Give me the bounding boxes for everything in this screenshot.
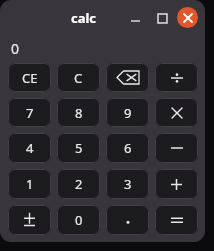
button[interactable]: 4: [8, 133, 51, 163]
button[interactable]: 8: [57, 98, 100, 127]
button[interactable]: [155, 98, 198, 127]
button[interactable]: [155, 169, 198, 199]
button[interactable]: Backspace: [106, 63, 149, 92]
button[interactable]: 3: [106, 169, 149, 199]
staticText: 5: [75, 139, 83, 157]
staticText: 2: [75, 175, 83, 193]
staticText: 1: [26, 175, 34, 193]
button[interactable]: 6: [106, 133, 149, 163]
staticText: 3: [124, 175, 132, 193]
button[interactable]: [8, 205, 51, 235]
button[interactable]: [155, 133, 198, 163]
button[interactable]: CE: [8, 63, 51, 92]
staticText: calc: [71, 9, 97, 27]
button[interactable]: 1: [8, 169, 51, 199]
button[interactable]: [155, 63, 198, 92]
button[interactable]: Maximize: [152, 8, 172, 28]
button[interactable]: 0: [57, 205, 100, 235]
staticText: 8: [75, 104, 83, 122]
button[interactable]: 7: [8, 98, 51, 127]
button[interactable]: 2: [57, 169, 100, 199]
staticText: CE: [22, 69, 38, 87]
button[interactable]: 5: [57, 133, 100, 163]
button[interactable]: Minimize: [125, 8, 145, 28]
staticText: 0: [75, 211, 83, 229]
button[interactable]: 9: [106, 98, 149, 127]
staticText: 9: [124, 104, 132, 122]
staticText: 4: [26, 139, 34, 157]
staticText: C: [74, 69, 83, 87]
staticText: 7: [26, 104, 34, 122]
button[interactable]: [106, 205, 149, 235]
staticText: 6: [124, 139, 132, 157]
button[interactable]: Close: [177, 7, 198, 28]
button[interactable]: C: [57, 63, 100, 92]
button[interactable]: [155, 205, 198, 235]
staticText: 0: [11, 39, 20, 58]
